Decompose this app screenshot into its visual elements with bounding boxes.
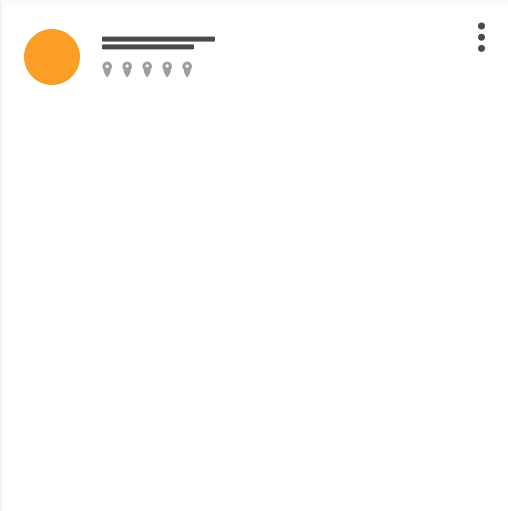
button[interactable]: More options [466,16,496,58]
button[interactable]: Profile photo [24,29,80,85]
